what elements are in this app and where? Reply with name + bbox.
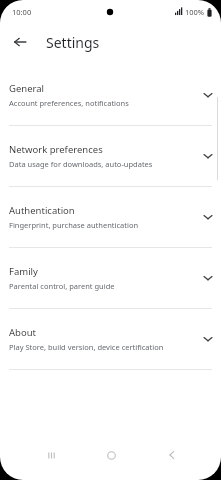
staticText: General: [9, 82, 45, 95]
button[interactable]: About: [0, 309, 221, 369]
button[interactable]: Family: [0, 248, 221, 308]
staticText: Settings: [46, 33, 100, 52]
staticText: Family: [9, 265, 38, 278]
staticText: Data usage for downloads, auto-updates: [9, 159, 153, 169]
button[interactable]: Back: [161, 444, 183, 466]
staticText: Play Store, build version, device certif…: [9, 342, 164, 352]
button[interactable]: General: [0, 65, 221, 125]
staticText: Parental control, parent guide: [9, 281, 115, 291]
staticText: Fingerprint, purchase authentication: [9, 220, 139, 230]
staticText: 10:00: [12, 7, 32, 17]
button[interactable]: Back: [8, 30, 32, 54]
staticText: Account preferences, notifications: [9, 98, 129, 108]
staticText: Network preferences: [9, 143, 103, 156]
button[interactable]: Home: [100, 444, 122, 466]
staticText: Authentication: [9, 204, 75, 217]
button[interactable]: Recents: [40, 444, 62, 466]
staticText: 100%: [185, 7, 205, 17]
staticText: About: [9, 326, 36, 339]
button[interactable]: Network preferences: [0, 126, 221, 186]
button[interactable]: Authentication: [0, 187, 221, 247]
